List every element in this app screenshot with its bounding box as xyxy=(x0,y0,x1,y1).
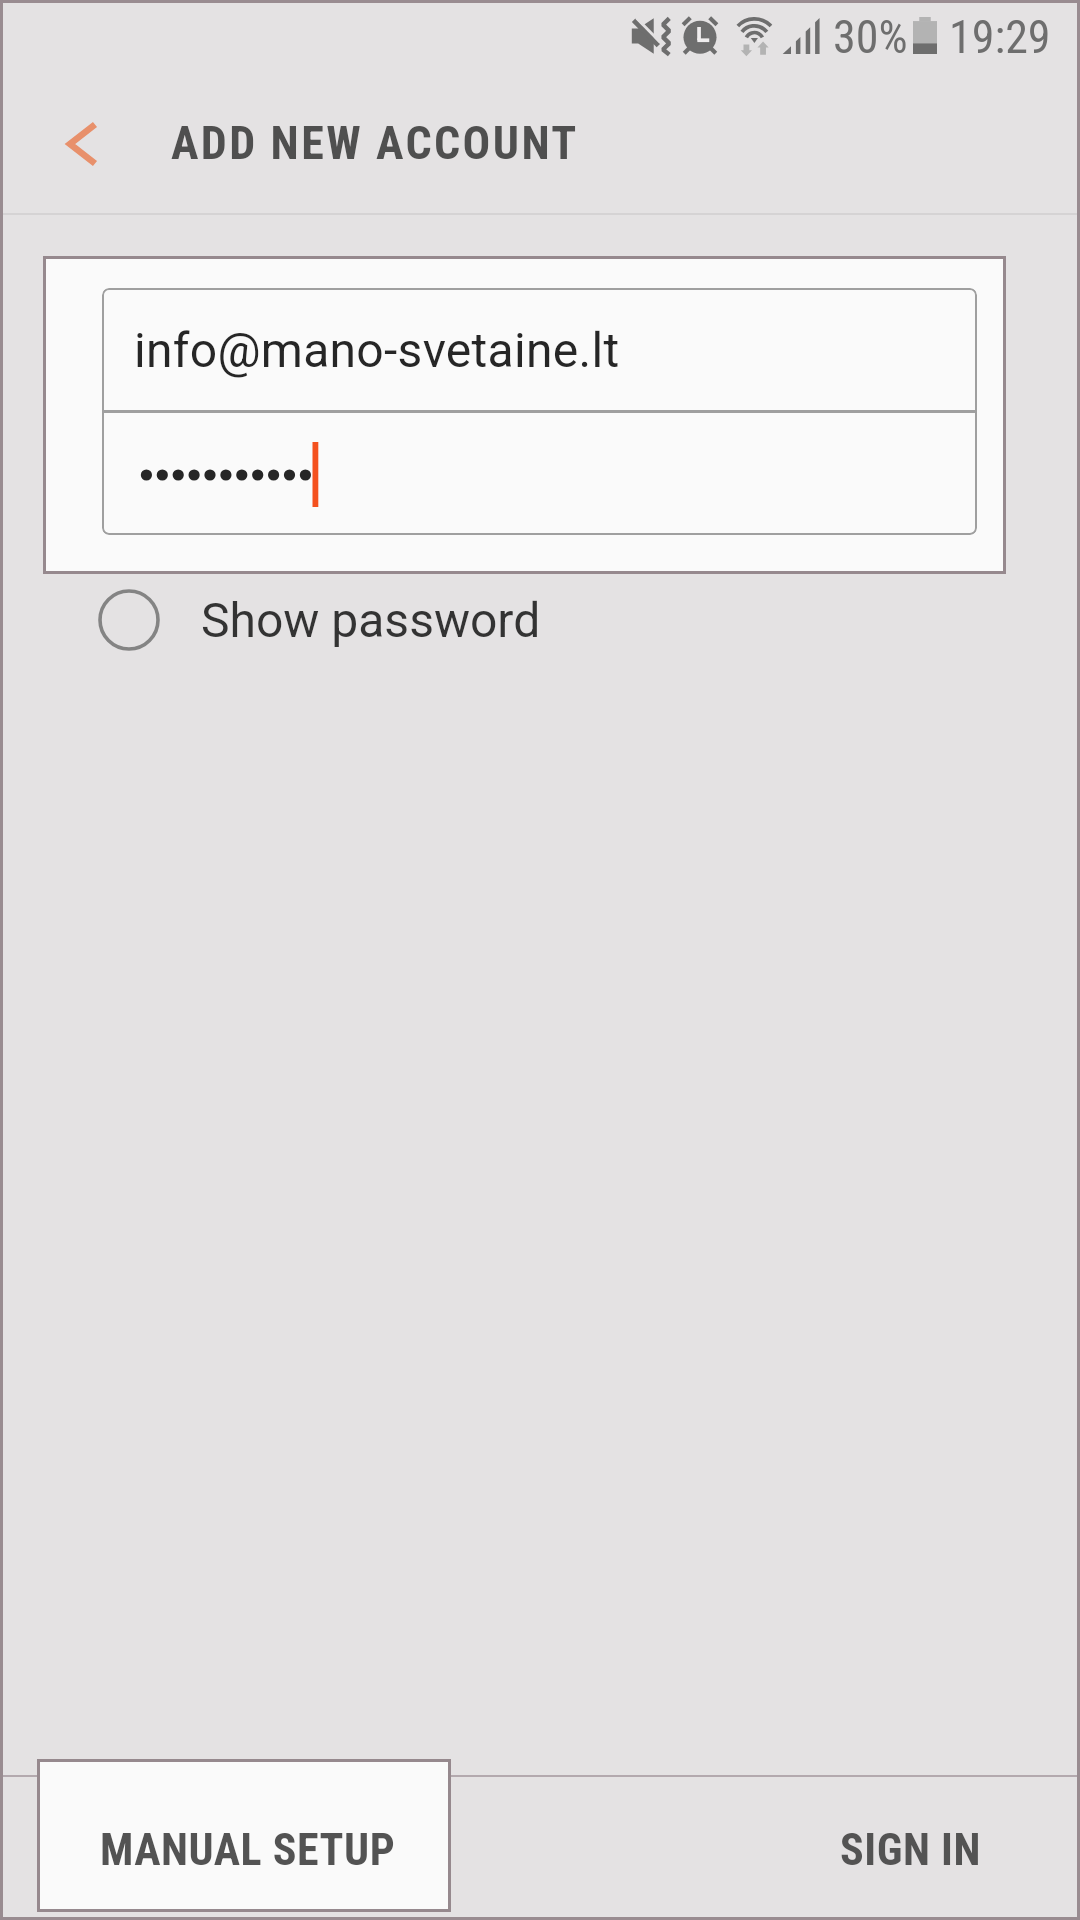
button[interactable]: Show password xyxy=(0,580,1080,660)
staticText: info@mano-svetaine.lt xyxy=(134,322,620,378)
staticText: Show password xyxy=(201,592,541,648)
button[interactable]: MANUAL SETUP xyxy=(37,1759,451,1912)
staticText: ADD NEW ACCOUNT xyxy=(171,116,579,170)
button[interactable]: info@mano-svetaine.lt xyxy=(102,290,973,410)
button[interactable] xyxy=(102,413,973,533)
staticText: MANUAL SETUP xyxy=(100,1824,396,1876)
staticText: 19:29 xyxy=(949,10,1051,64)
staticText: 30% xyxy=(833,10,908,64)
button[interactable]: SIGN IN xyxy=(751,1759,1068,1912)
button[interactable]: Back xyxy=(38,102,126,186)
staticText: SIGN IN xyxy=(840,1824,981,1876)
